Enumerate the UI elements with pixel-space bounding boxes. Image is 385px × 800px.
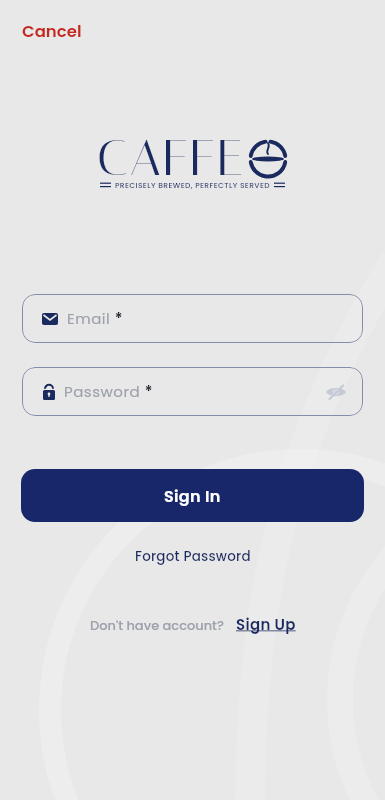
- button[interactable]: Password *: [22, 367, 363, 416]
- staticText: Email *: [67, 308, 123, 329]
- staticText: PRECISELY BREWED, PERFECTLY SERVED: [115, 180, 270, 190]
- button[interactable]: Sign Up: [236, 614, 296, 635]
- button[interactable]: Forgot Password: [135, 547, 251, 566]
- button[interactable]: Email *: [22, 294, 363, 343]
- staticText: Sign Up: [236, 614, 296, 635]
- staticText: Don't have account?: [90, 616, 224, 634]
- button[interactable]: Sign In: [21, 469, 364, 522]
- staticText: CAFFE: [97, 129, 245, 188]
- staticText: Forgot Password: [135, 547, 251, 566]
- button[interactable]: Cancel: [22, 20, 82, 43]
- staticText: Password *: [64, 381, 153, 402]
- staticText: Sign In: [164, 485, 221, 507]
- staticText: Cancel: [22, 20, 82, 43]
